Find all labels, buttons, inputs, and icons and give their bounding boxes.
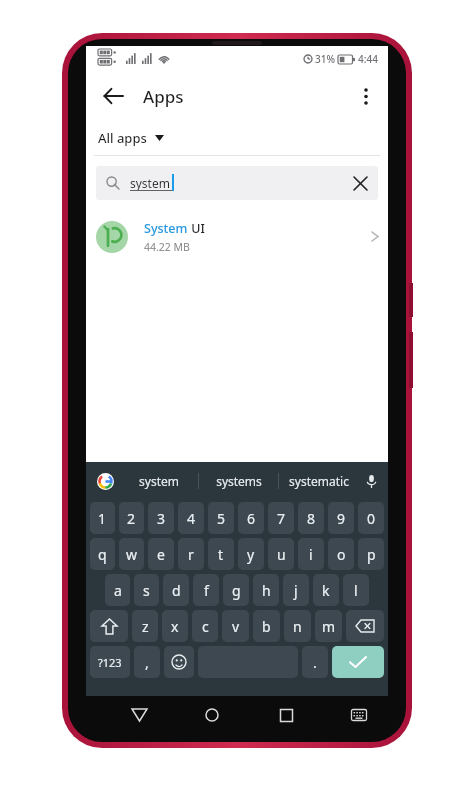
button[interactable]: w bbox=[119, 538, 144, 570]
button[interactable]: system bbox=[120, 462, 198, 500]
button[interactable]: systematic bbox=[279, 462, 358, 500]
button[interactable]: a bbox=[105, 574, 130, 606]
button[interactable]: p bbox=[358, 538, 384, 570]
staticText: v bbox=[232, 617, 240, 636]
button[interactable]: m bbox=[315, 610, 342, 642]
button[interactable]: Backspace bbox=[346, 610, 384, 642]
staticText: q bbox=[98, 545, 107, 564]
button[interactable]: o bbox=[328, 538, 354, 570]
staticText: p bbox=[367, 545, 376, 564]
staticText: j bbox=[294, 581, 298, 600]
button[interactable]: Hide keyboard bbox=[340, 696, 378, 734]
button[interactable]: n bbox=[284, 610, 311, 642]
staticText: . bbox=[313, 653, 317, 672]
staticText: 5 bbox=[217, 509, 226, 528]
staticText: 4:44 bbox=[358, 52, 378, 66]
staticText: All apps bbox=[98, 129, 147, 147]
button[interactable]: u bbox=[268, 538, 294, 570]
button[interactable]: 9 bbox=[328, 502, 354, 534]
button[interactable]: system bbox=[96, 166, 378, 200]
button[interactable]: i bbox=[298, 538, 324, 570]
button[interactable]: l bbox=[343, 574, 369, 606]
staticText: g bbox=[232, 581, 241, 600]
staticText: 44.22 MB bbox=[144, 240, 190, 254]
button[interactable]: Back bbox=[120, 696, 158, 734]
staticText: 8 bbox=[307, 509, 316, 528]
button[interactable]: systems bbox=[199, 462, 278, 500]
button[interactable]: ?123 bbox=[90, 646, 130, 678]
button[interactable]: 1 bbox=[90, 502, 115, 534]
button[interactable]: g bbox=[223, 574, 249, 606]
button[interactable]: f bbox=[193, 574, 219, 606]
button[interactable]: More options bbox=[344, 74, 388, 118]
staticText: k bbox=[322, 581, 330, 600]
button[interactable]: Shift bbox=[90, 610, 128, 642]
staticText: systematic bbox=[289, 473, 349, 489]
button[interactable]: j bbox=[283, 574, 309, 606]
button[interactable]: y bbox=[238, 538, 264, 570]
button[interactable]: System bbox=[86, 209, 388, 264]
button[interactable]: 0 bbox=[358, 502, 384, 534]
staticText: s bbox=[143, 581, 150, 600]
other: Emoji bbox=[171, 654, 187, 670]
button[interactable]: Enter bbox=[332, 646, 384, 678]
staticText: 0 bbox=[367, 509, 376, 528]
staticText: f bbox=[204, 581, 209, 600]
button[interactable]: 6 bbox=[238, 502, 264, 534]
staticText: System bbox=[144, 220, 188, 237]
button[interactable]: r bbox=[178, 538, 204, 570]
staticText: l bbox=[354, 581, 358, 600]
button[interactable]: b bbox=[253, 610, 280, 642]
button[interactable]: Google bbox=[90, 466, 120, 496]
staticText: systems bbox=[216, 473, 262, 489]
button[interactable]: x bbox=[162, 610, 188, 642]
staticText: r bbox=[188, 545, 194, 564]
button[interactable]: 2 bbox=[119, 502, 144, 534]
staticText: 7 bbox=[277, 509, 286, 528]
button[interactable]: z bbox=[132, 610, 158, 642]
staticText: a bbox=[114, 581, 122, 600]
button[interactable]: All apps bbox=[94, 125, 168, 151]
button[interactable]: v bbox=[222, 610, 249, 642]
staticText: , bbox=[145, 653, 149, 672]
button[interactable]: k bbox=[313, 574, 339, 606]
button[interactable]: , bbox=[134, 646, 160, 678]
button[interactable]: 8 bbox=[298, 502, 324, 534]
staticText: b bbox=[262, 617, 271, 636]
button[interactable]: 5 bbox=[208, 502, 234, 534]
button[interactable]: d bbox=[163, 574, 189, 606]
other: Backspace bbox=[355, 619, 375, 633]
button[interactable]: t bbox=[208, 538, 234, 570]
staticText: 6 bbox=[247, 509, 256, 528]
button[interactable]: 7 bbox=[268, 502, 294, 534]
button[interactable]: 4 bbox=[178, 502, 204, 534]
button[interactable]: q bbox=[90, 538, 115, 570]
button[interactable]: Back bbox=[90, 73, 136, 119]
button[interactable]: h bbox=[253, 574, 279, 606]
button[interactable]: Home bbox=[193, 696, 231, 734]
staticText: 4 bbox=[187, 509, 196, 528]
staticText: 2 bbox=[127, 509, 136, 528]
staticText: t bbox=[218, 545, 224, 564]
staticText: c bbox=[202, 617, 209, 636]
staticText: m bbox=[322, 617, 336, 636]
staticText: z bbox=[142, 617, 149, 636]
button[interactable]: . bbox=[302, 646, 328, 678]
button[interactable]: e bbox=[148, 538, 174, 570]
staticText: 9 bbox=[337, 509, 346, 528]
staticText: y bbox=[247, 545, 255, 564]
staticText: n bbox=[293, 617, 302, 636]
button[interactable]: 3 bbox=[148, 502, 174, 534]
button[interactable]: c bbox=[192, 610, 218, 642]
button[interactable]: Clear search bbox=[346, 169, 374, 197]
button[interactable]: Voice input bbox=[358, 468, 384, 494]
staticText: d bbox=[172, 581, 181, 600]
staticText: ?123 bbox=[98, 655, 122, 670]
button[interactable]: s bbox=[134, 574, 159, 606]
button[interactable]: Emoji bbox=[164, 646, 194, 678]
staticText: 3 bbox=[157, 509, 166, 528]
staticText: system bbox=[139, 473, 179, 489]
staticText: system bbox=[130, 175, 170, 191]
button[interactable]: Recents bbox=[267, 696, 305, 734]
